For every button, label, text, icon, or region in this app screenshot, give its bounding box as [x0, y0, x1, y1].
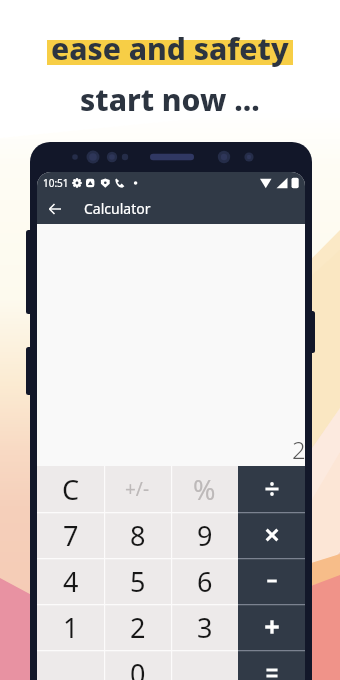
button[interactable]: [37, 650, 104, 680]
staticText: 6: [197, 563, 213, 600]
staticText: 10:51: [43, 176, 69, 190]
button[interactable]: 3: [171, 604, 238, 650]
button[interactable]: Back: [37, 193, 305, 224]
staticText: 9: [197, 517, 213, 554]
button[interactable]: Back: [44, 198, 66, 220]
staticText: 1: [63, 609, 79, 646]
button[interactable]: sub: [238, 558, 305, 604]
button[interactable]: 5: [104, 558, 171, 604]
staticText: Calculator: [84, 199, 151, 218]
button[interactable]: eq: [238, 650, 305, 680]
button[interactable]: 8: [104, 512, 171, 558]
staticText: 3: [197, 609, 213, 646]
staticText: 2: [130, 609, 146, 646]
staticText: start now ...: [80, 79, 260, 120]
staticText: 0: [130, 655, 146, 680]
staticText: 5: [130, 563, 146, 600]
button[interactable]: add: [238, 604, 305, 650]
staticText: 4: [63, 563, 79, 600]
button[interactable]: %: [171, 466, 238, 512]
button[interactable]: mul: [238, 512, 305, 558]
other: add: [260, 615, 284, 639]
button[interactable]: 7: [37, 512, 104, 558]
staticText: 8: [130, 517, 146, 554]
staticText: +/-: [125, 476, 150, 502]
button[interactable]: 6: [171, 558, 238, 604]
other: sub: [260, 569, 284, 593]
button[interactable]: .: [171, 650, 238, 680]
button[interactable]: 1: [37, 604, 104, 650]
button[interactable]: +/-: [104, 466, 171, 512]
button[interactable]: 2: [104, 604, 171, 650]
other: eq: [260, 661, 284, 680]
button[interactable]: 0: [104, 650, 171, 680]
staticText: ease and safety: [51, 28, 289, 69]
staticText: %: [193, 471, 216, 508]
staticText: 2: [292, 433, 305, 466]
button[interactable]: C: [37, 466, 104, 512]
button[interactable]: div: [238, 466, 305, 512]
button[interactable]: 9: [171, 512, 238, 558]
staticText: C: [62, 471, 80, 508]
other: div: [260, 477, 284, 501]
staticText: 7: [63, 517, 79, 554]
button[interactable]: 4: [37, 558, 104, 604]
other: mul: [260, 523, 284, 547]
